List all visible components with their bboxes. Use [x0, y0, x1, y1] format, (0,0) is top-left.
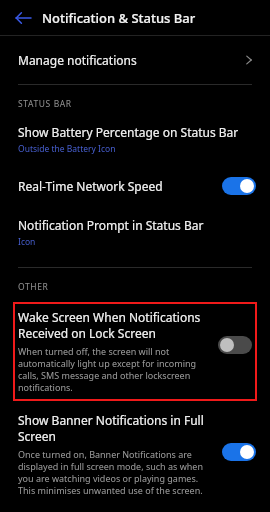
staticText: Real-Time Network Speed	[18, 178, 222, 194]
staticText: Wake Screen When Notifications Received …	[18, 309, 214, 341]
button[interactable]: Wake Screen When Notifications Received …	[13, 302, 257, 401]
button[interactable]: Notification Prompt in Status Bar	[0, 215, 270, 250]
staticText: Manage notifications	[18, 52, 242, 68]
button[interactable]: Show Battery Percentage on Status Bar	[0, 122, 270, 157]
button[interactable]: Real-Time Network Speed	[0, 173, 270, 199]
staticText: When turned off, the screen will not aut…	[18, 345, 200, 393]
staticText: Show Banner Notifications in Full Screen	[18, 412, 218, 444]
staticText: Show Battery Percentage on Status Bar	[18, 124, 239, 140]
button[interactable]: Manage notifications	[0, 36, 270, 84]
staticText: Icon	[18, 236, 36, 248]
staticText: Outside the Battery Icon	[18, 143, 116, 155]
button[interactable]: Toggle on	[222, 177, 256, 195]
staticText: Notification & Status Bar	[42, 9, 196, 27]
staticText: OTHER	[18, 281, 49, 293]
staticText: Notification Prompt in Status Bar	[18, 217, 204, 233]
staticText: STATUS BAR	[18, 98, 72, 110]
button[interactable]: Show Banner Notifications in Full Screen	[0, 412, 270, 496]
button[interactable]: Back	[10, 5, 36, 31]
button[interactable]: Toggle off	[218, 336, 252, 354]
staticText: Once turned on, Banner Notifications are…	[18, 448, 208, 496]
button[interactable]: Toggle on	[222, 443, 256, 461]
